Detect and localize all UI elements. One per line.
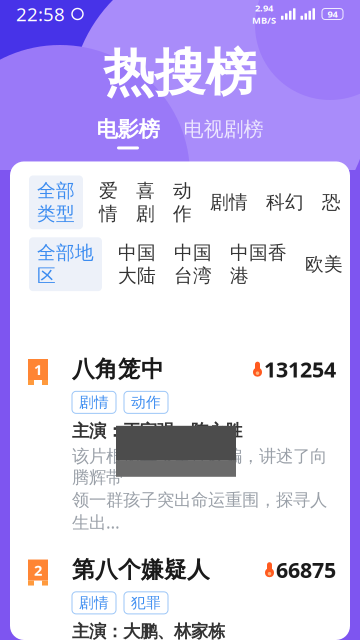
staticText: 剧情 <box>210 191 248 214</box>
staticText: 电视剧榜 <box>183 117 263 142</box>
staticText: 动作 <box>131 393 161 411</box>
staticText: 喜剧 <box>136 179 155 225</box>
button[interactable]: 动作 <box>171 175 194 229</box>
button[interactable]: 爱情 <box>97 175 120 229</box>
button[interactable]: 中国香港 <box>228 237 289 291</box>
staticText: 2.94 <box>255 2 273 14</box>
button[interactable]: 全部类型 <box>29 175 83 229</box>
staticText: 领一群孩子突出命运重围，探寻人生出… <box>72 489 327 533</box>
staticText: 全部类型 <box>37 179 75 225</box>
staticText: 犯罪 <box>131 594 161 612</box>
staticText: 恐 <box>322 191 341 214</box>
button[interactable]: 全部地区 <box>29 237 102 291</box>
staticText: 中国大陆 <box>118 241 156 287</box>
staticText: 94 <box>327 8 337 20</box>
staticText: 第八个嫌疑人 <box>72 556 210 584</box>
button[interactable]: 喜剧 <box>134 175 157 229</box>
staticText: 欧美 <box>305 253 343 276</box>
staticText: 主演：王宝强、陈永胜 <box>72 420 242 442</box>
staticText: 热搜榜 <box>103 42 256 104</box>
staticText: 全部地区 <box>37 241 94 287</box>
button[interactable]: 中国大陆 <box>116 237 158 291</box>
staticText: 131254 <box>264 355 336 383</box>
button[interactable]: 电视剧榜 <box>183 117 263 149</box>
button[interactable]: 中国台湾 <box>172 237 214 291</box>
staticText: 1 <box>34 360 42 379</box>
button[interactable]: 电影榜 <box>96 116 159 149</box>
button[interactable]: 恐 <box>320 187 343 218</box>
staticText: 中国台湾 <box>174 241 212 287</box>
button[interactable]: 1 <box>10 355 350 533</box>
staticText: 八角笼中 <box>72 355 164 383</box>
staticText: 爱情 <box>99 179 118 225</box>
staticText: 剧情 <box>79 594 109 612</box>
button[interactable]: 科幻 <box>264 187 306 218</box>
button[interactable]: 剧情 <box>208 187 250 218</box>
staticText: 剧情 <box>79 393 109 411</box>
staticText: 22:58 <box>16 2 65 26</box>
staticText: 该片根据真实事件改编，讲述了向腾辉带 <box>72 446 327 488</box>
button[interactable]: 2 <box>10 555 350 640</box>
staticText: 主演：大鹏、林家栋 <box>72 621 225 640</box>
staticText: 科幻 <box>266 191 304 214</box>
staticText: 动作 <box>173 179 192 225</box>
staticText: 2 <box>34 560 42 580</box>
staticText: MB/S <box>252 14 276 26</box>
staticText: 66875 <box>276 555 336 584</box>
staticText: 电影榜 <box>96 116 159 142</box>
staticText: 中国香港 <box>230 241 287 287</box>
button[interactable]: 欧美 <box>303 249 345 280</box>
